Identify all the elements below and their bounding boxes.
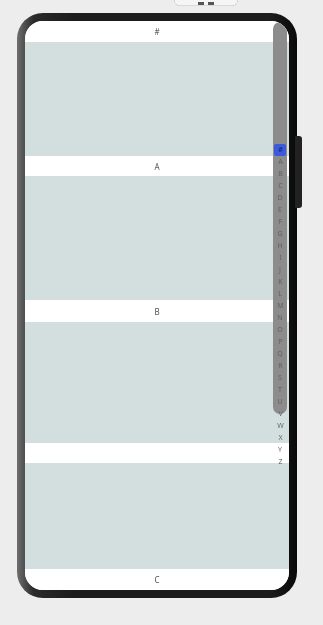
button[interactable]: E xyxy=(274,204,286,216)
staticText: B xyxy=(278,169,283,179)
button[interactable]: O xyxy=(274,324,286,336)
button[interactable]: C xyxy=(25,569,289,589)
button[interactable]: Q xyxy=(274,348,286,360)
staticText: L xyxy=(278,289,282,299)
button[interactable]: B xyxy=(274,168,286,180)
staticText: U xyxy=(277,397,283,407)
staticText: # xyxy=(154,26,160,37)
button[interactable]: B xyxy=(25,300,289,322)
button[interactable]: G xyxy=(274,228,286,240)
staticText: Z xyxy=(278,457,283,467)
staticText: G xyxy=(277,229,283,239)
button[interactable]: # xyxy=(25,21,289,42)
staticText: A xyxy=(278,157,283,167)
button[interactable]: P xyxy=(274,336,286,348)
staticText: P xyxy=(278,337,283,347)
button[interactable]: L xyxy=(274,288,286,300)
staticText: A xyxy=(154,161,160,172)
button[interactable]: W xyxy=(274,420,286,432)
staticText: K xyxy=(278,277,283,287)
button[interactable] xyxy=(25,42,289,156)
staticText: F xyxy=(278,217,282,227)
button[interactable]: U xyxy=(274,396,286,408)
button[interactable]: # xyxy=(274,144,286,156)
staticText: S xyxy=(278,373,282,383)
button[interactable]: S xyxy=(274,372,286,384)
staticText: C xyxy=(154,574,160,585)
staticText: R xyxy=(278,361,283,371)
button[interactable]: J xyxy=(274,264,286,276)
staticText: D xyxy=(277,193,283,203)
button[interactable]: A xyxy=(274,156,286,168)
button[interactable]: A xyxy=(25,156,289,176)
button[interactable]: M xyxy=(274,300,286,312)
button[interactable]: Y xyxy=(274,444,286,456)
button[interactable]: F xyxy=(274,216,286,228)
staticText: N xyxy=(277,313,283,323)
staticText: C xyxy=(278,181,283,191)
staticText: M xyxy=(277,301,284,311)
staticText: Y xyxy=(278,445,282,455)
staticText: # xyxy=(278,145,283,155)
button[interactable]: V xyxy=(274,408,286,420)
staticText: T xyxy=(278,385,282,395)
staticText: X xyxy=(278,433,283,443)
button[interactable]: C xyxy=(274,180,286,192)
button[interactable]: R xyxy=(274,360,286,372)
button[interactable]: X xyxy=(274,432,286,444)
staticText: Q xyxy=(277,349,283,359)
button[interactable] xyxy=(25,176,289,300)
button[interactable]: Z xyxy=(274,456,286,468)
other: Power button xyxy=(295,136,302,208)
button[interactable]: N xyxy=(274,312,286,324)
staticText: B xyxy=(154,306,160,317)
staticText: J xyxy=(279,265,281,275)
button[interactable]: T xyxy=(274,384,286,396)
staticText: W xyxy=(277,421,284,431)
staticText: H xyxy=(277,241,283,251)
staticText: V xyxy=(278,409,283,419)
button[interactable]: I xyxy=(274,252,286,264)
button[interactable]: K xyxy=(274,276,286,288)
button[interactable] xyxy=(25,322,289,443)
button[interactable]: H xyxy=(274,240,286,252)
other: Scroll handle xyxy=(273,22,287,414)
staticText: I xyxy=(279,253,282,263)
staticText: O xyxy=(277,325,283,335)
staticText: E xyxy=(278,205,282,215)
button[interactable] xyxy=(25,443,289,463)
button[interactable]: D xyxy=(274,192,286,204)
